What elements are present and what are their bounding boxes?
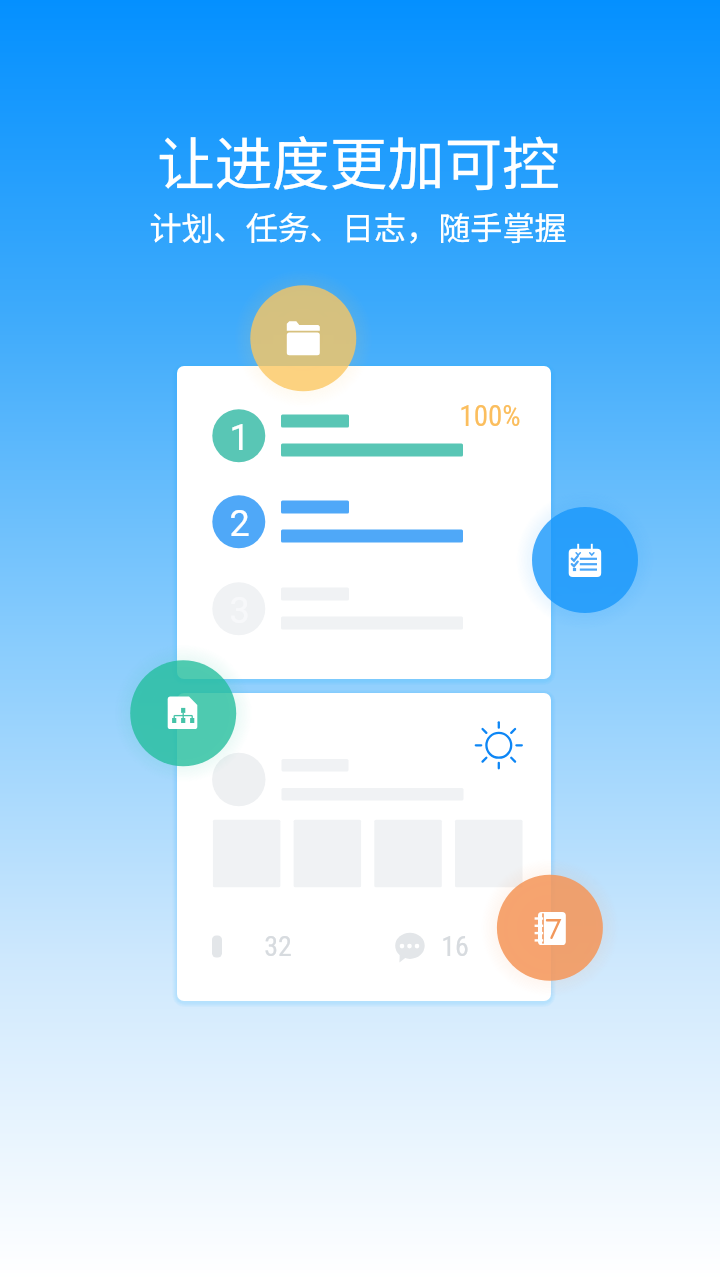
staticText: 16 [441,930,469,963]
staticText: 1 [229,417,250,459]
staticText: 100% [459,399,521,433]
button[interactable]: 2 [199,484,279,564]
button[interactable]: Task checklist [532,507,638,613]
staticText: 32 [264,930,292,963]
staticText: 2 [229,503,250,545]
button[interactable]: Projects folder [250,285,356,391]
staticText: 计划、任务、日志，随手掌握 [149,203,567,249]
button[interactable]: Calendar [497,875,603,981]
button[interactable]: 1 [199,398,279,478]
staticText: 让进度更加可控 [157,118,560,201]
button[interactable]: 3 [199,571,279,651]
button[interactable]: Work report [130,660,236,766]
